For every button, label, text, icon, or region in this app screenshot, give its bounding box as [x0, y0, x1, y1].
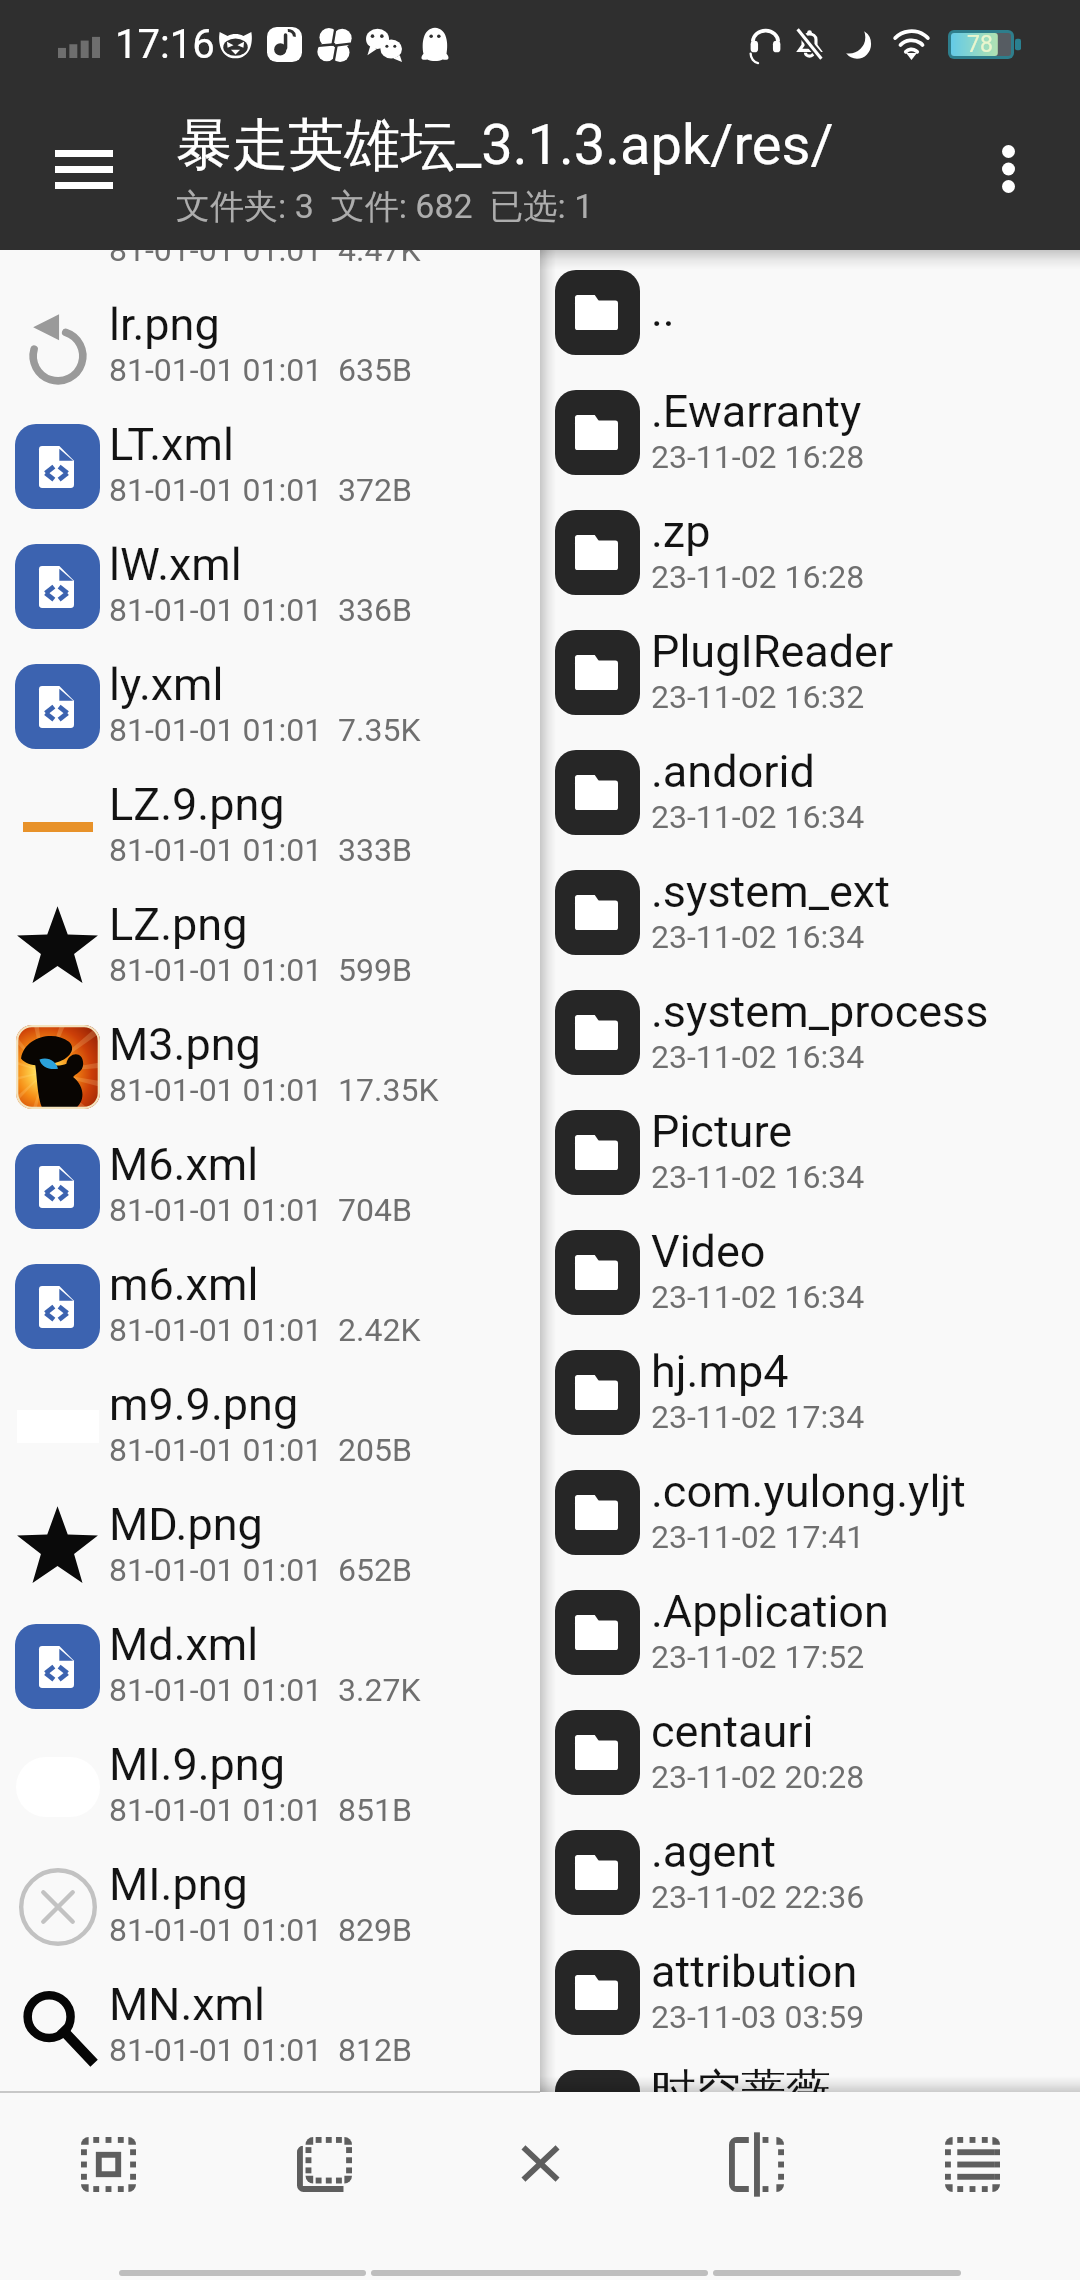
staticText: lW.xml: [109, 538, 242, 591]
staticText: .com.yulong.yljt: [651, 1465, 966, 1518]
button[interactable]: Close: [432, 2092, 648, 2234]
button[interactable]: lr.png: [0, 286, 540, 406]
staticText: .system_ext: [651, 865, 890, 918]
staticText: 23-11-02 16:28: [651, 438, 865, 476]
button[interactable]: Md.xml: [0, 1606, 540, 1726]
staticText: .Application: [651, 1585, 889, 1638]
button[interactable]: Split view: [648, 2092, 864, 2234]
staticText: 23-11-02 16:34: [651, 798, 865, 836]
staticText: LT.xml: [109, 418, 234, 471]
button[interactable]: .system_ext: [540, 852, 1080, 972]
staticText: MI.9.png: [109, 1738, 285, 1791]
button[interactable]: LZ.9.png: [0, 766, 540, 886]
staticText: M6.xml: [109, 1138, 259, 1191]
button[interactable]: LZ.png: [0, 886, 540, 1006]
staticText: .Ewarranty: [651, 385, 862, 438]
staticText: 23-11-03 03:59: [651, 1998, 865, 2036]
button[interactable]: MN.xml: [0, 1966, 540, 2086]
staticText: Video: [651, 1225, 766, 1278]
staticText: 暴走英雄坛_3.1.3.apk/res/: [176, 110, 834, 181]
staticText: 文件夹: 3 文件: 682 已选: 1: [176, 185, 594, 228]
staticText: 81-01-01 01:01 333B: [109, 831, 412, 869]
button[interactable]: 时空蔷薇: [540, 2052, 1080, 2092]
staticText: 81-01-01 01:01 599B: [109, 951, 412, 989]
staticText: 81-01-01 01:01 851B: [109, 1791, 412, 1829]
button[interactable]: .Ewarranty: [540, 372, 1080, 492]
staticText: .system_process: [651, 985, 989, 1038]
staticText: 23-11-02 16:34: [651, 1278, 865, 1316]
button[interactable]: m9.9.png: [0, 1366, 540, 1486]
staticText: 23-11-02 16:34: [651, 1038, 865, 1076]
staticText: 81-01-01 01:01 704B: [109, 1191, 412, 1229]
staticText: ly.xml: [109, 658, 224, 711]
staticText: lr.png: [109, 298, 220, 351]
staticText: .andorid: [651, 745, 815, 798]
staticText: 81-01-01 01:01 17.35K: [109, 1071, 439, 1109]
button[interactable]: ..: [540, 252, 1080, 372]
button[interactable]: MD.png: [0, 1486, 540, 1606]
staticText: 23-11-02 22:36: [651, 1878, 865, 1916]
button[interactable]: Video: [540, 1212, 1080, 1332]
button[interactable]: List mode: [864, 2092, 1080, 2234]
button[interactable]: .agent: [540, 1812, 1080, 1932]
staticText: 23-11-02 16:34: [651, 1158, 865, 1196]
staticText: .agent: [651, 1825, 777, 1878]
button[interactable]: m6.xml: [0, 1246, 540, 1366]
staticText: MD.png: [109, 1498, 263, 1551]
staticText: 23-11-02 16:28: [651, 558, 865, 596]
button[interactable]: M3.png: [0, 1006, 540, 1126]
staticText: attribution: [651, 1945, 858, 1998]
staticText: m6.xml: [109, 1258, 259, 1311]
staticText: hj.mp4: [651, 1345, 789, 1398]
button[interactable]: Picture: [540, 1092, 1080, 1212]
button[interactable]: Invert selection: [216, 2092, 432, 2234]
staticText: 23-11-02 20:28: [651, 1758, 865, 1796]
button[interactable]: More options: [953, 109, 1063, 229]
button[interactable]: attribution: [540, 1932, 1080, 2052]
staticText: ..: [651, 284, 675, 337]
staticText: Picture: [651, 1105, 793, 1158]
button[interactable]: MI.9.png: [0, 1726, 540, 1846]
staticText: m9.9.png: [109, 1378, 299, 1431]
staticText: 81-01-01 01:01 336B: [109, 591, 412, 629]
button[interactable]: .system_process: [540, 972, 1080, 1092]
staticText: LZ.png: [109, 898, 248, 951]
button[interactable]: 81-01-01 01:01 4.47K: [0, 250, 540, 286]
staticText: Md.xml: [109, 1618, 259, 1671]
staticText: M3.png: [109, 1018, 261, 1071]
staticText: 81-01-01 01:01 7.35K: [109, 711, 421, 749]
button[interactable]: .andorid: [540, 732, 1080, 852]
staticText: 23-11-02 17:52: [651, 1638, 865, 1676]
staticText: 81-01-01 01:01 652B: [109, 1551, 412, 1589]
button[interactable]: ly.xml: [0, 646, 540, 766]
button[interactable]: centauri: [540, 1692, 1080, 1812]
button[interactable]: .zp: [540, 492, 1080, 612]
button[interactable]: hj.mp4: [540, 1332, 1080, 1452]
button[interactable]: .Application: [540, 1572, 1080, 1692]
button[interactable]: Navigation menu: [24, 109, 144, 229]
button[interactable]: LT.xml: [0, 406, 540, 526]
staticText: 81-01-01 01:01 635B: [109, 351, 412, 389]
button[interactable]: M6.xml: [0, 1126, 540, 1246]
staticText: 17:16: [115, 21, 215, 68]
staticText: PlugIReader: [651, 625, 894, 678]
staticText: MN.xml: [109, 1978, 265, 2031]
staticText: LZ.9.png: [109, 778, 285, 831]
staticText: 81-01-01 01:01 205B: [109, 1431, 412, 1469]
staticText: 23-11-02 16:32: [651, 678, 865, 716]
button[interactable]: .com.yulong.yljt: [540, 1452, 1080, 1572]
staticText: 78: [967, 31, 993, 58]
staticText: 81-01-01 01:01 2.42K: [109, 1311, 421, 1349]
staticText: 81-01-01 01:01 4.47K: [109, 250, 421, 269]
staticText: 81-01-01 01:01 829B: [109, 1911, 412, 1949]
button[interactable]: Select all: [0, 2092, 216, 2234]
button[interactable]: PlugIReader: [540, 612, 1080, 732]
staticText: 81-01-01 01:01 812B: [109, 2031, 412, 2069]
staticText: 23-11-02 16:34: [651, 918, 865, 956]
staticText: 23-11-02 17:34: [651, 1398, 865, 1436]
button[interactable]: MI.png: [0, 1846, 540, 1966]
button[interactable]: lW.xml: [0, 526, 540, 646]
staticText: 81-01-01 01:01 3.27K: [109, 1671, 421, 1709]
staticText: centauri: [651, 1705, 814, 1758]
staticText: 时空蔷薇: [651, 2063, 831, 2092]
